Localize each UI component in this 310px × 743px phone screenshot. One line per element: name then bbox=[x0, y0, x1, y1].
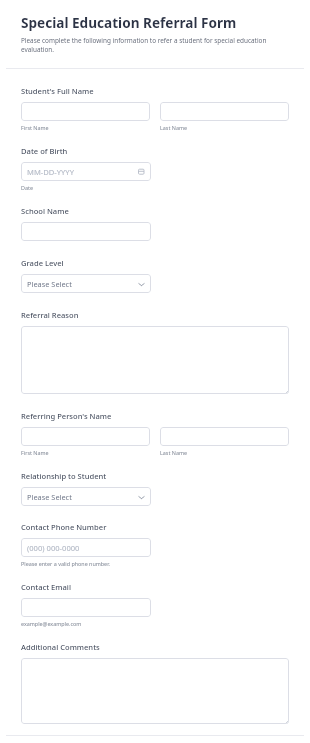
staticText: Additional Comments bbox=[21, 642, 100, 652]
button[interactable] bbox=[21, 326, 289, 394]
staticText: Please Select bbox=[27, 492, 138, 502]
staticText: Relationship to Student bbox=[21, 471, 107, 481]
button[interactable] bbox=[160, 102, 289, 121]
staticText: Special Education Referral Form bbox=[21, 13, 237, 32]
other: Open dropdown bbox=[138, 495, 145, 500]
staticText: example@example.com bbox=[21, 620, 82, 627]
button[interactable] bbox=[160, 427, 289, 446]
staticText: First Name bbox=[21, 449, 49, 456]
button[interactable] bbox=[21, 658, 289, 724]
button[interactable] bbox=[21, 598, 151, 617]
button[interactable]: MM-DD-YYYY bbox=[21, 162, 151, 181]
button[interactable]: (000) 000-0000 bbox=[21, 538, 151, 557]
button[interactable] bbox=[21, 427, 150, 446]
button[interactable]: Please Select bbox=[21, 487, 151, 506]
button[interactable]: Please Select bbox=[21, 274, 151, 293]
staticText: Grade Level bbox=[21, 258, 64, 268]
button[interactable] bbox=[21, 222, 151, 241]
staticText: (000) 000-0000 bbox=[27, 543, 80, 553]
staticText: Last Name bbox=[160, 124, 187, 131]
staticText: Student's Full Name bbox=[21, 86, 94, 96]
staticText: Date of Birth bbox=[21, 146, 68, 156]
staticText: Please enter a valid phone number. bbox=[21, 560, 110, 567]
button[interactable] bbox=[21, 102, 150, 121]
staticText: School Name bbox=[21, 206, 69, 216]
other: Open dropdown bbox=[138, 282, 145, 287]
staticText: Contact Phone Number bbox=[21, 522, 107, 532]
staticText: Referral Reason bbox=[21, 310, 79, 320]
staticText: First Name bbox=[21, 124, 49, 131]
staticText: Contact Email bbox=[21, 582, 71, 592]
staticText: MM-DD-YYYY bbox=[27, 167, 74, 177]
staticText: Last Name bbox=[160, 449, 187, 456]
other: Pick date bbox=[138, 168, 145, 175]
staticText: Date bbox=[21, 184, 33, 191]
staticText: Referring Person's Name bbox=[21, 411, 112, 421]
staticText: Please Select bbox=[27, 279, 138, 289]
staticText: Please complete the following informatio… bbox=[21, 36, 289, 54]
